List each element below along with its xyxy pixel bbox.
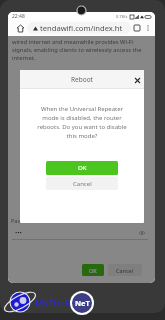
button[interactable]: tendawifi.com/index.ht — [27, 22, 131, 34]
staticText: Password — [11, 217, 36, 224]
staticText: Reboot — [71, 75, 93, 84]
staticText: When the Universal Repeater mode is disa… — [34, 105, 130, 139]
staticText: ••• — [15, 229, 22, 237]
staticText: wired internet and meanwhile provides Wi… — [12, 38, 150, 62]
button[interactable]: OK — [82, 264, 104, 276]
button[interactable]: OK — [46, 161, 118, 175]
button[interactable]: More options — [143, 23, 153, 33]
button[interactable]: Cancel — [46, 177, 118, 190]
staticText: tendawifi.com/index.ht — [40, 23, 123, 33]
staticText: OK — [78, 164, 87, 172]
button[interactable]: Tabs — [131, 22, 143, 34]
button[interactable]: Home — [14, 22, 26, 34]
staticText: 0.7K/s — [116, 14, 128, 19]
staticText: NeT — [75, 298, 90, 308]
staticText: Cancel — [116, 267, 134, 274]
button[interactable]: Cancel — [108, 264, 142, 276]
button[interactable]: Close — [130, 73, 144, 87]
staticText: 22:48 — [12, 13, 25, 20]
staticText: MyTricks — [35, 296, 75, 308]
staticText: OK — [89, 267, 97, 274]
staticText: Cancel — [73, 180, 92, 188]
